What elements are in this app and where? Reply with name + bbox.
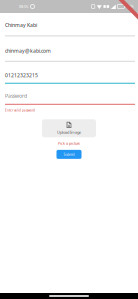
staticText: chinmay@kabi.com: [5, 47, 51, 54]
staticText: 84%: [127, 4, 133, 8]
staticText: Submit: [63, 152, 74, 157]
staticText: 01212323215: [5, 72, 38, 79]
staticText: Pick a picture: [58, 141, 80, 146]
staticText: Password: [5, 92, 27, 99]
staticText: Chinmay Kabi: [5, 21, 37, 28]
staticText: Enter valid password: [5, 108, 35, 112]
staticText: Upload Image: [57, 129, 81, 135]
button[interactable]: Upload Image: [42, 119, 96, 137]
button[interactable]: Submit: [56, 150, 81, 159]
staticText: 08:55: [19, 4, 28, 9]
